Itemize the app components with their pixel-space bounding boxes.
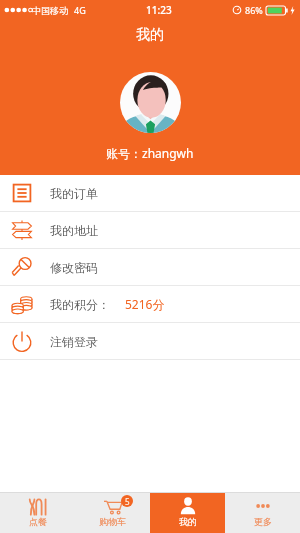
staticText: 注销登录	[50, 334, 98, 349]
staticText: 我的订单	[50, 186, 98, 201]
button[interactable]: 我的	[150, 493, 225, 533]
staticText: 5	[125, 496, 130, 507]
staticText: 我的地址	[50, 223, 98, 238]
button[interactable]: 更多	[225, 493, 300, 533]
staticText: 我的积分：	[50, 297, 110, 312]
staticText: 我的	[136, 26, 164, 44]
staticText: 点餐	[29, 516, 47, 527]
staticText: 修改密码	[50, 260, 98, 275]
staticText: 账号：zhangwh	[106, 145, 194, 161]
staticText: 购物车	[99, 516, 126, 527]
button[interactable]: 我的订单	[0, 175, 300, 212]
button[interactable]: 我的积分：	[0, 286, 300, 323]
button[interactable]: 点餐	[0, 493, 75, 533]
staticText: 4G	[74, 4, 86, 16]
staticText: 5216分	[125, 296, 165, 312]
button[interactable]: 5	[75, 493, 150, 533]
staticText: 86%	[245, 4, 263, 16]
staticText: 中国移动	[32, 5, 68, 16]
staticText: 我的	[179, 516, 197, 527]
button[interactable]: 修改密码	[0, 249, 300, 286]
staticText: 更多	[254, 516, 272, 527]
button[interactable]: 我的地址	[0, 212, 300, 249]
staticText: 11:23	[146, 3, 172, 17]
button[interactable]: 注销登录	[0, 323, 300, 360]
